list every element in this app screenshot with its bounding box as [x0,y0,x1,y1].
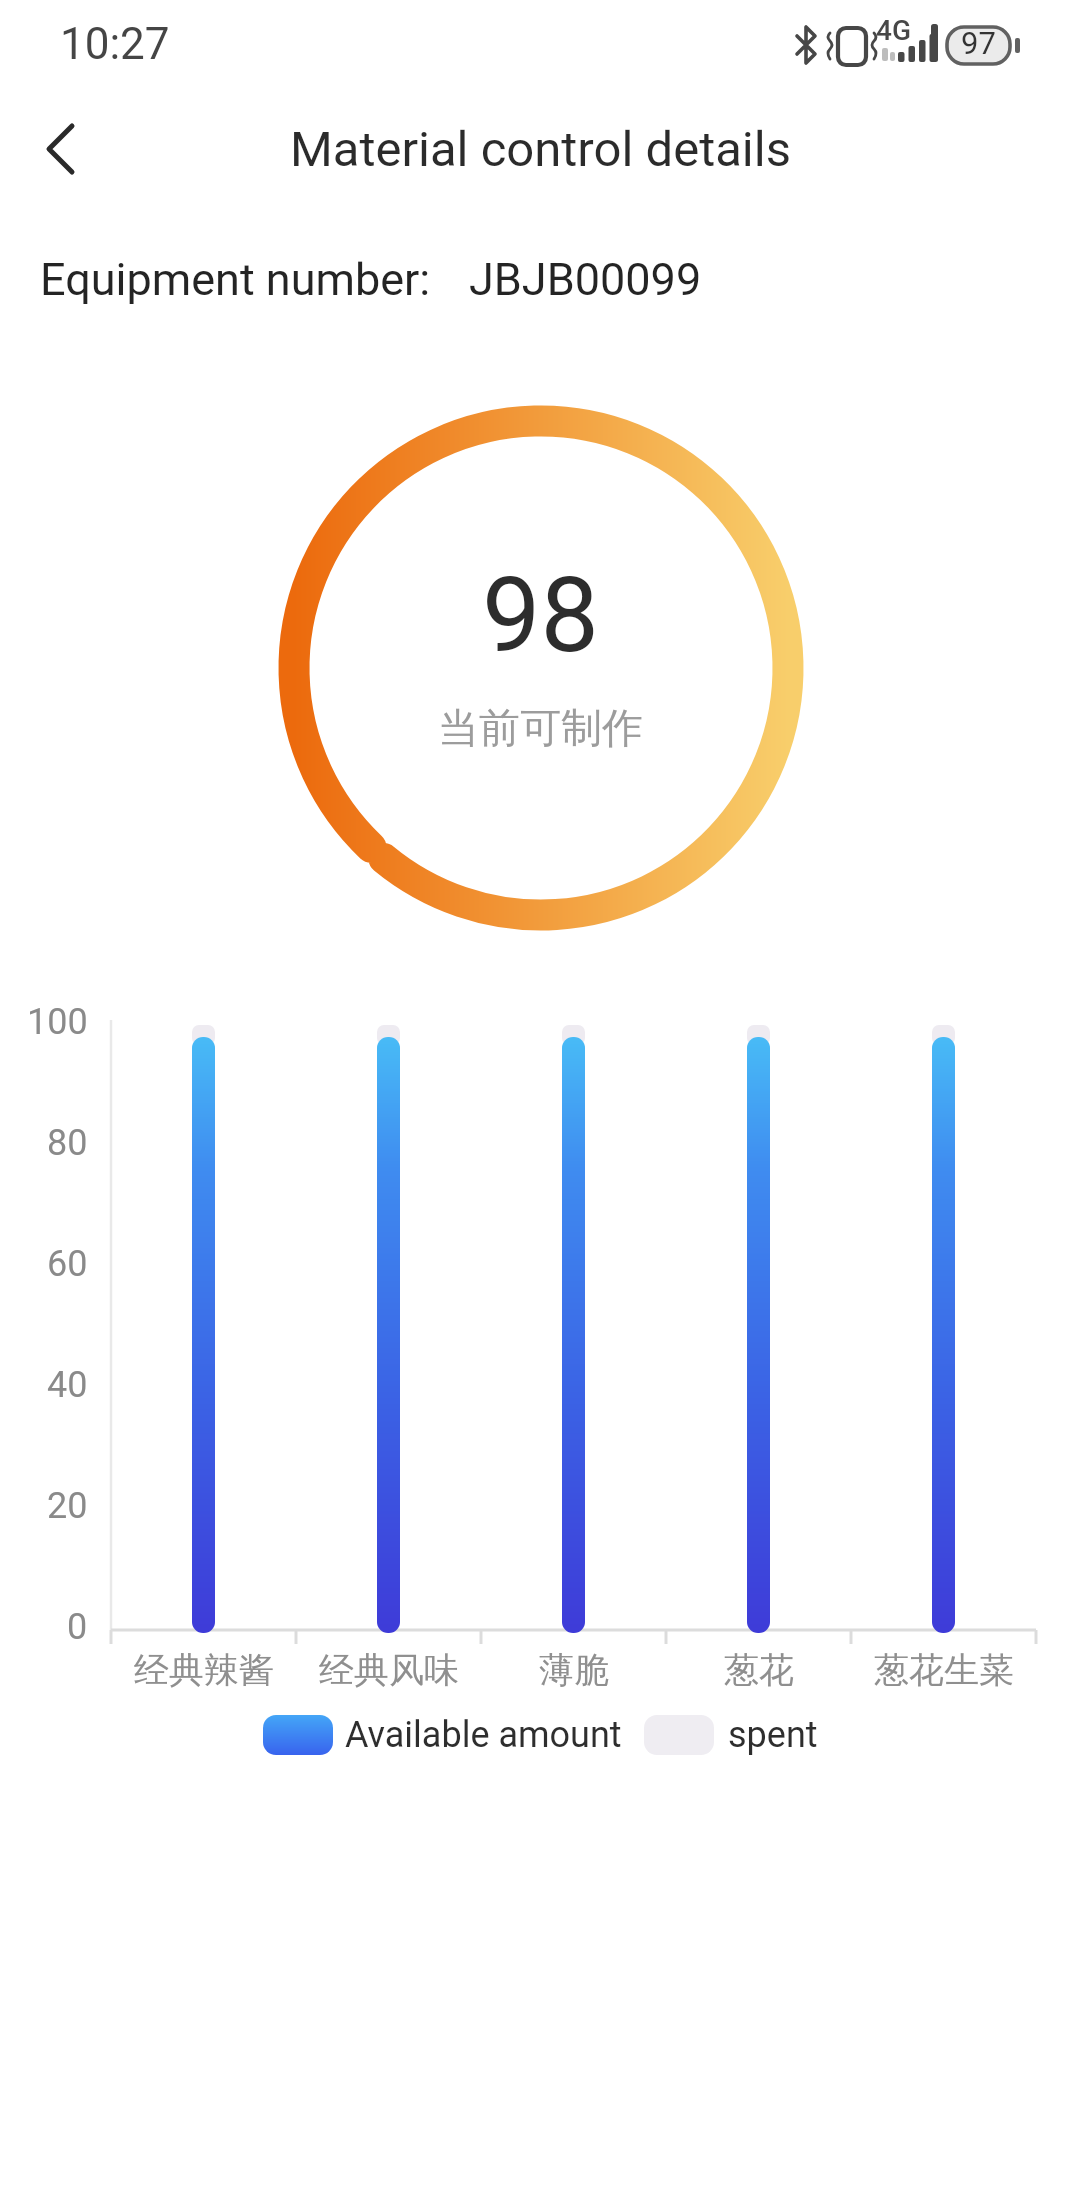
staticText: 葱花生菜 [874,1648,1014,1692]
staticText: 4G [876,14,911,47]
staticText: 40 [47,1364,88,1406]
staticText: 80 [47,1122,88,1164]
staticText: JBJB00099 [469,253,702,306]
staticText: spent [728,1714,818,1756]
staticText: 20 [47,1485,88,1527]
staticText: 98 [482,555,599,677]
button[interactable] [263,1715,333,1755]
staticText: 葱花 [724,1648,794,1692]
staticText: 经典辣酱 [134,1648,274,1692]
staticText: 薄脆 [539,1648,609,1692]
staticText: 100 [27,1001,88,1043]
staticText: Available amount [345,1714,622,1756]
button[interactable] [644,1715,714,1755]
staticText: 60 [47,1243,88,1285]
staticText: 10:27 [60,18,170,70]
staticText: 97 [961,25,996,61]
button[interactable] [25,113,97,185]
staticText: Equipment number: [40,253,431,306]
staticText: 0 [67,1606,88,1648]
staticText: 经典风味 [319,1648,459,1692]
staticText: Material control details [290,121,791,178]
staticText: 当前可制作 [438,703,643,755]
